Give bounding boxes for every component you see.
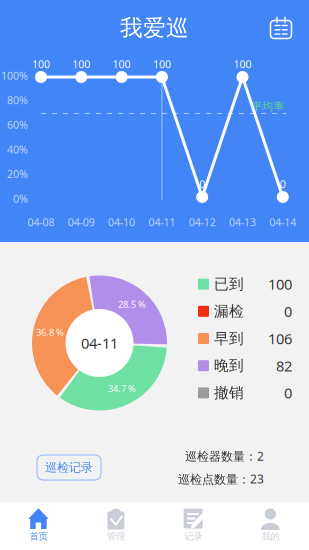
staticText: 106 (268, 329, 292, 348)
staticText: 已到 (214, 275, 244, 293)
staticText: 82 (276, 356, 292, 375)
button[interactable]: 巡检记录 (37, 455, 101, 480)
staticText: 0 (199, 177, 205, 191)
staticText: 0 (284, 302, 292, 321)
staticText: 04-11 (148, 215, 175, 229)
staticText: 04-12 (189, 215, 216, 229)
staticText: 撤销 (214, 384, 244, 402)
button[interactable]: Calendar (259, 6, 303, 50)
staticText: 40% (7, 142, 28, 156)
staticText: 0 (280, 177, 286, 191)
staticText: 04-11 (81, 333, 118, 353)
staticText: 100 (233, 57, 251, 71)
staticText: 100 (268, 274, 292, 294)
staticText: 0% (13, 191, 28, 206)
staticText: 36.8 % (36, 326, 64, 338)
staticText: 34.7 % (108, 382, 136, 395)
button[interactable]: 管理 (77, 502, 154, 550)
staticText: 晚到 (214, 357, 244, 375)
button[interactable]: 首页 (0, 502, 77, 550)
staticText: 平均率 (251, 100, 284, 113)
staticText: 100 (113, 57, 131, 71)
staticText: 20% (7, 167, 28, 181)
staticText: 早到 (214, 329, 244, 347)
staticText: 首页 (30, 530, 48, 542)
staticText: 漏检 (214, 302, 244, 320)
button[interactable]: 我的 (232, 502, 309, 550)
staticText: 管理 (107, 530, 125, 542)
staticText: 80% (7, 93, 28, 107)
staticText: 100 (153, 57, 171, 71)
staticText: 记录 (184, 530, 202, 542)
staticText: 0 (284, 383, 292, 403)
staticText: 04-09 (68, 215, 95, 229)
staticText: 100% (1, 68, 28, 83)
staticText: 04-08 (27, 215, 54, 229)
staticText: 04-13 (229, 215, 256, 229)
staticText: 60% (7, 118, 28, 132)
staticText: 28.5 % (118, 298, 146, 310)
staticText: 巡检记录 (45, 460, 93, 475)
staticText: 巡检器数量：2 (185, 448, 264, 464)
staticText: 04-10 (108, 215, 135, 229)
staticText: 04-14 (269, 215, 296, 229)
staticText: 100 (72, 57, 90, 71)
staticText: 我爱巡 (120, 14, 189, 42)
staticText: 巡检点数量：23 (178, 471, 264, 487)
staticText: 我的 (261, 530, 279, 542)
button[interactable]: 记录 (154, 502, 232, 550)
staticText: 100 (32, 57, 50, 71)
